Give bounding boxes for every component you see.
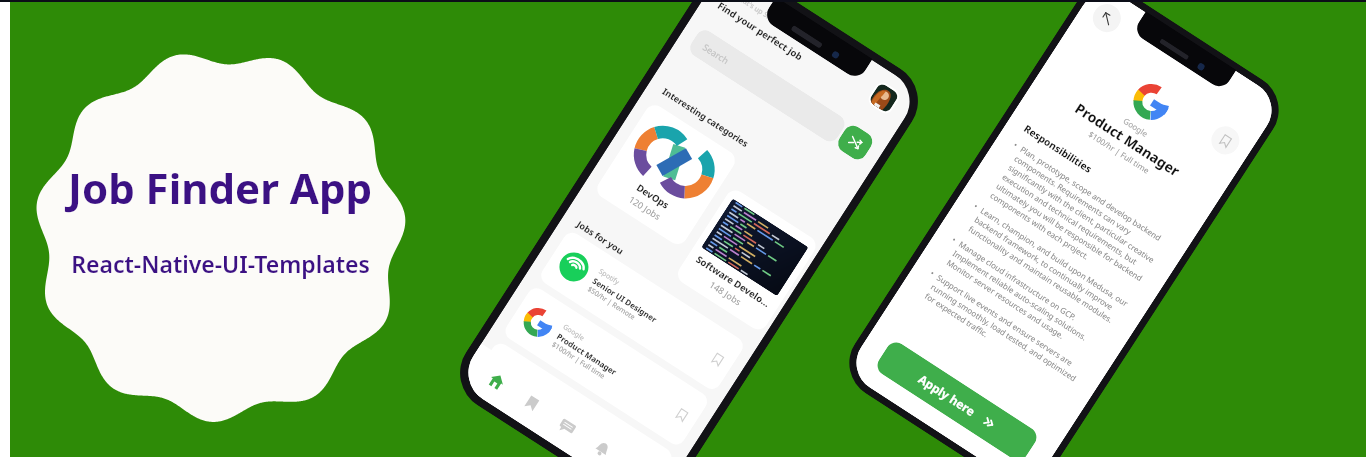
staticText: Jobs for you [575,218,627,257]
button[interactable]: Apply here [873,338,1041,457]
staticText: $100/hr | Full time [1087,128,1152,176]
staticText: 148 Jobs [707,278,744,307]
staticText: $50/hr | Remote [585,284,637,322]
button[interactable]: Home [466,350,527,411]
staticText: Interesting categories [660,85,752,150]
button[interactable]: Messages [537,395,597,457]
button[interactable]: Search [686,26,848,145]
staticText: • [1012,139,1021,150]
staticText: Product Manager [555,330,620,378]
staticText: Manage cloud infrastructure on GCP. Impl… [945,238,1110,362]
staticText: • [928,267,938,279]
button[interactable]: Spotify [537,229,747,393]
staticText: Apply here [916,371,979,419]
button[interactable]: Alerts [572,418,632,457]
staticText: Product Manager [1072,99,1183,180]
staticText: Google [561,322,586,343]
button[interactable]: Bookmark [1206,121,1245,160]
staticText: 120 Jobs [627,193,663,222]
button[interactable]: Back [1087,0,1126,37]
staticText: Spotify [597,267,621,287]
button[interactable]: Filter [834,122,876,163]
staticText: Find your perfect job [715,0,805,64]
staticText: React-Native-UI-Templates [71,248,370,279]
staticText: Search [701,41,732,66]
button[interactable]: Google [502,284,711,448]
button[interactable]: Saved [502,373,562,434]
staticText: What's up Shelia [732,0,784,30]
staticText: DevOps [634,181,672,212]
staticText: $100/hr | Full time [549,340,607,382]
staticText: • [972,200,981,212]
staticText: Plan, prototype, scope and develop backe… [988,143,1172,295]
staticText: Job Finder App [68,159,372,216]
staticText: Senior UI Designer [591,275,660,325]
button[interactable]: DevOps [593,101,739,248]
button[interactable]: Software Develo... [674,186,820,333]
staticText: Google [1121,115,1150,139]
button[interactable]: Profile [868,82,900,114]
staticText: • [950,234,959,245]
staticText: Software Develo... [693,253,773,310]
staticText: Support live events and ensure servers a… [923,272,1089,395]
staticText: Learn, champion, and build upon Medusa, … [967,205,1132,328]
staticText: Responsibilities [1021,121,1095,176]
